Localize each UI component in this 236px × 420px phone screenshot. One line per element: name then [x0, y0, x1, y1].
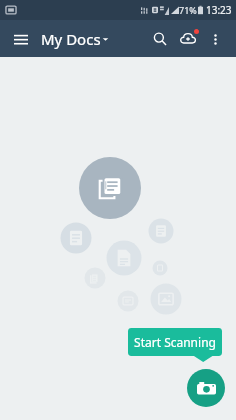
button[interactable]: My Docs — [38, 26, 112, 52]
button[interactable]: Start Scanning — [128, 328, 222, 362]
button[interactable]: Search — [146, 25, 174, 53]
staticText: 71% — [179, 4, 197, 16]
button[interactable]: Start scanning with camera — [187, 369, 225, 407]
button[interactable]: More options — [202, 26, 228, 52]
button[interactable]: Open navigation menu — [8, 26, 34, 52]
staticText: My Docs — [41, 29, 101, 49]
button[interactable]: Upload to cloud — [174, 25, 202, 53]
staticText: Start Scanning — [134, 334, 216, 350]
staticText: 13:23 — [206, 3, 232, 17]
